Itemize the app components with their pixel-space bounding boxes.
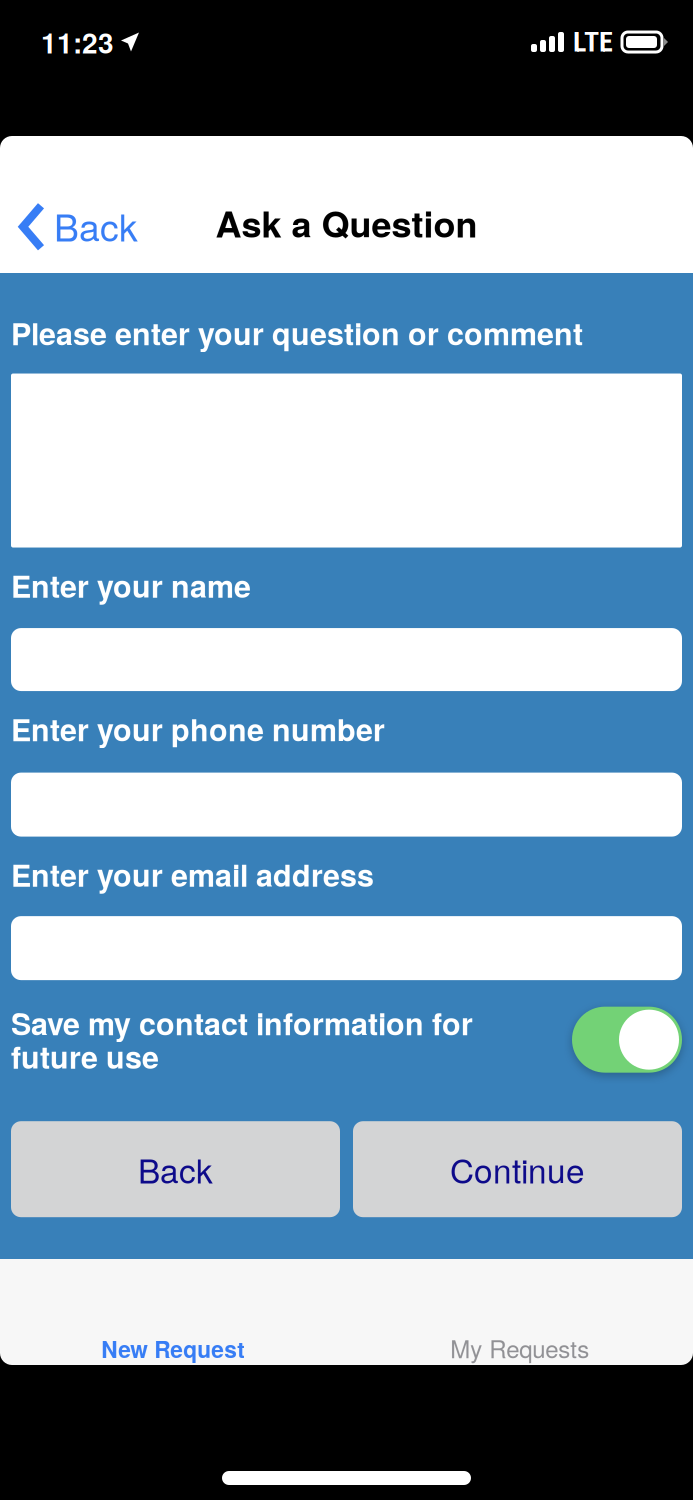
button[interactable]: Back [11,1121,340,1217]
button[interactable]: Text field [11,628,682,691]
button[interactable]: New Request [0,1259,346,1365]
staticText: New Request [101,1332,245,1365]
button[interactable]: Save my contact information for future u… [572,1007,682,1073]
staticText: Ask a Question [215,197,477,249]
staticText: Enter your email address [11,853,374,896]
button[interactable]: Continue [353,1121,682,1217]
staticText: Enter your name [11,563,251,607]
button[interactable]: Text field [11,773,682,837]
staticText: LTE [573,26,613,58]
staticText: Back [54,198,138,252]
staticText: 11:23 [41,22,114,62]
staticText: Enter your phone number [11,707,385,751]
button[interactable]: Text field [11,916,682,980]
staticText: My Requests [450,1331,589,1365]
button[interactable]: My Requests [346,1259,693,1365]
staticText: Please enter your question or comment [11,311,583,354]
staticText: Back [138,1145,213,1193]
button[interactable]: Back [0,190,154,255]
staticText: Save my contact information for future u… [11,1001,473,1078]
button[interactable]: Text field [11,373,682,547]
staticText: Continue [450,1145,585,1193]
